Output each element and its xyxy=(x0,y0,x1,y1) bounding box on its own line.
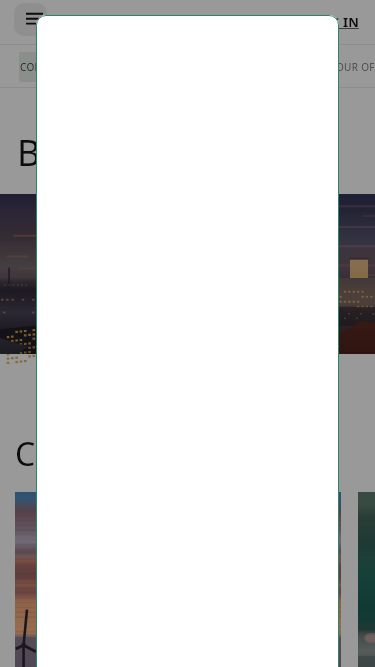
button[interactable]: OUR OFFICES xyxy=(336,52,375,82)
staticText: LOG IN xyxy=(313,13,359,31)
staticText: OUR OFFICES xyxy=(336,60,375,74)
staticText: BCG xyxy=(65,9,116,43)
staticText: Careers xyxy=(15,432,131,476)
button[interactable]: LOG IN xyxy=(313,13,359,31)
button[interactable]: CONTACT US xyxy=(19,52,84,82)
staticText: CONTACT US xyxy=(20,60,83,74)
staticText: Book your stay xyxy=(17,128,268,177)
button[interactable]: Open navigation menu xyxy=(14,3,47,36)
